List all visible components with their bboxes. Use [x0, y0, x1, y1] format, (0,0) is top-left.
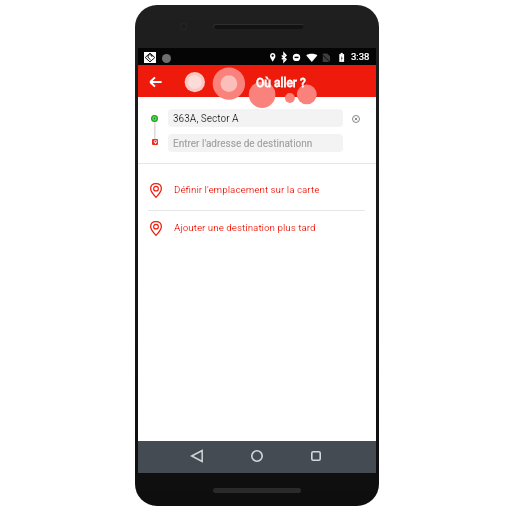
button[interactable]: Back	[183, 442, 211, 470]
button[interactable]: Recent apps	[302, 442, 330, 470]
button[interactable]: Home	[243, 442, 271, 470]
button[interactable]: Définir l'emplacement sur la carte	[138, 167, 376, 211]
staticText: Entrer l'adresse de destinationn	[173, 138, 313, 150]
staticText: 363A, Sector A	[173, 113, 239, 125]
button[interactable]: Back	[144, 71, 166, 93]
button[interactable]: Clear text	[350, 113, 362, 125]
button[interactable]: 363A, Sector A	[168, 109, 343, 127]
staticText: Définir l'emplacement sur la carte	[174, 184, 320, 195]
staticText: Où aller ?	[256, 76, 306, 90]
button[interactable]: Ajouter une destination plus tard	[138, 209, 376, 245]
staticText: Ajouter une destination plus tard	[174, 222, 316, 233]
staticText: 3:38	[351, 51, 370, 62]
button[interactable]: Entrer l'adresse de destinationn	[168, 134, 343, 152]
